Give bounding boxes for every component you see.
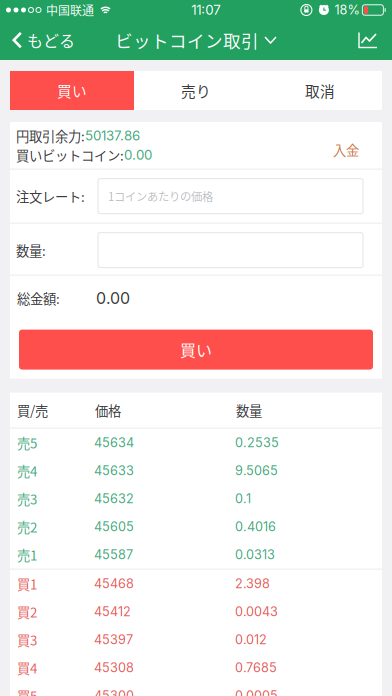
staticText: 0.00 [124, 147, 152, 163]
staticText: 45633 [94, 463, 134, 478]
staticText: 売1 [17, 545, 37, 564]
staticText: 45587 [94, 547, 133, 562]
staticText: 買/売 [17, 400, 48, 420]
button[interactable]: もどる [0, 20, 83, 60]
button[interactable]: 売1 [10, 541, 382, 569]
staticText: 45634 [94, 435, 134, 450]
button[interactable]: 買4 [10, 654, 382, 682]
staticText: 数量: [16, 240, 46, 260]
button[interactable]: 売り [134, 71, 258, 110]
staticText: 買い [57, 80, 87, 101]
staticText: 9.5065 [235, 463, 278, 478]
button[interactable]: 売5 [10, 429, 382, 457]
button[interactable]: 買3 [10, 626, 382, 654]
staticText: 売4 [17, 461, 37, 480]
staticText: 0.7685 [235, 660, 277, 675]
staticText: 18% [334, 2, 359, 18]
button[interactable]: 売4 [10, 457, 382, 485]
button[interactable]: ビットコイン取引 [115, 20, 277, 60]
staticText: 0.00 [96, 288, 130, 308]
button[interactable]: 買い [10, 71, 134, 110]
button[interactable]: チャート [348, 20, 392, 60]
button[interactable]: 買い [19, 330, 373, 370]
button[interactable]: 入金 [333, 126, 382, 164]
staticText: 注文レート: [16, 186, 85, 206]
staticText: 数量 [236, 400, 262, 420]
staticText: 0.0043 [235, 604, 278, 619]
staticText: 取消 [305, 80, 335, 101]
staticText: 45308 [94, 660, 134, 675]
staticText: ビットコイン取引 [115, 27, 259, 53]
staticText: 買4 [17, 658, 37, 677]
staticText: 45412 [94, 604, 131, 619]
staticText: 買5 [17, 686, 37, 696]
staticText: 45632 [94, 491, 134, 506]
staticText: 45300 [94, 688, 134, 696]
staticText: 買2 [17, 602, 37, 621]
staticText: 0.012 [235, 632, 267, 647]
staticText: 買いビットコイン: [16, 145, 124, 165]
button[interactable]: 売2 [10, 513, 382, 541]
button[interactable]: 買1 [10, 570, 382, 598]
staticText: 買い [180, 338, 212, 361]
staticText: 11:07 [191, 2, 221, 18]
staticText: 中国联通 [46, 1, 94, 19]
button[interactable]: 買2 [10, 598, 382, 626]
staticText: 売5 [17, 433, 37, 452]
staticText: 売3 [17, 489, 37, 508]
staticText: 円取引余力: [16, 126, 85, 145]
staticText: 売2 [17, 517, 37, 536]
staticText: 50137.86 [85, 128, 140, 144]
button[interactable]: 買5 [10, 682, 382, 696]
staticText: 価格 [95, 400, 121, 420]
staticText: 入金 [333, 140, 359, 159]
button[interactable]: 取消 [258, 71, 382, 110]
staticText: 買3 [17, 630, 37, 649]
staticText: 45397 [94, 632, 133, 647]
staticText: 0.1 [235, 491, 251, 506]
staticText: 0.2535 [235, 435, 279, 450]
staticText: 2.398 [235, 576, 270, 591]
button[interactable]: 売3 [10, 485, 382, 513]
staticText: 1コインあたりの価格 [108, 188, 213, 204]
staticText: 総金額: [17, 288, 60, 308]
staticText: 0.0005 [235, 688, 278, 696]
staticText: 45605 [94, 519, 134, 534]
staticText: 45468 [94, 576, 134, 591]
staticText: 売り [181, 80, 211, 101]
staticText: 0.4016 [235, 519, 276, 534]
staticText: 0.0313 [235, 547, 275, 562]
staticText: 買1 [17, 574, 37, 593]
staticText: もどる [27, 28, 75, 52]
